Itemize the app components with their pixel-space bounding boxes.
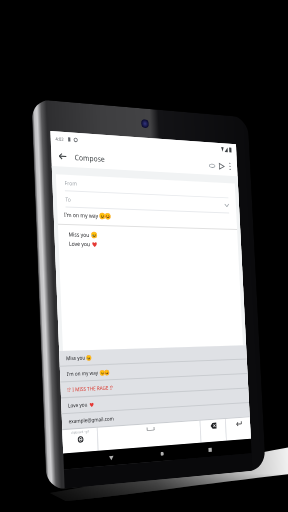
staticText: I'm on my way	[64, 211, 100, 219]
staticText: ⁉	[67, 386, 71, 394]
staticText: ⁉	[110, 384, 113, 392]
button[interactable]: Recent apps	[205, 443, 215, 456]
button[interactable]: Attach file	[207, 159, 217, 171]
button[interactable]: Keyboard settings	[62, 428, 98, 453]
button[interactable]: Back	[56, 149, 68, 163]
button[interactable]: ⁉	[60, 374, 248, 397]
button[interactable]: Home	[157, 447, 168, 460]
button[interactable]: Space	[98, 421, 201, 451]
staticText: Love you	[69, 240, 92, 247]
button[interactable]: Backspace	[200, 419, 226, 443]
staticText: I MISS THE RAGE	[71, 384, 110, 394]
button[interactable]: I'm on my way	[60, 360, 247, 381]
staticText: example@gmail.com	[68, 415, 115, 425]
button[interactable]: Back	[105, 451, 117, 465]
button[interactable]: More options	[226, 161, 234, 171]
button[interactable]: Miss you	[59, 345, 247, 366]
staticText: Miss you	[66, 354, 87, 362]
button[interactable]: Love you	[61, 388, 249, 413]
staticText: Love you	[68, 401, 89, 410]
staticText: Compose	[74, 152, 105, 164]
button[interactable]: Enter	[226, 417, 251, 441]
staticText: clipboard · gif	[71, 429, 90, 435]
button[interactable]: Send	[216, 160, 226, 172]
staticText: 4:02	[55, 135, 64, 142]
button[interactable]: example@gmail.com	[62, 403, 250, 429]
staticText: Miss you	[68, 230, 92, 238]
staticText: I'm on my way	[67, 369, 100, 378]
staticText: From	[64, 179, 78, 187]
staticText: To	[65, 195, 72, 203]
